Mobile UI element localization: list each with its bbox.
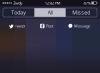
staticText: 12:42 PM xyxy=(45,0,61,6)
staticText: Today xyxy=(11,9,26,16)
button[interactable]: Post xyxy=(40,22,53,30)
staticText: Post xyxy=(46,23,53,29)
staticText: Tweet xyxy=(15,23,25,29)
button[interactable]: Tweet xyxy=(9,22,25,30)
staticText: Message xyxy=(74,23,90,29)
staticText: Missed xyxy=(72,9,90,16)
staticText: 2wdy xyxy=(13,0,22,6)
button[interactable]: Today xyxy=(3,8,34,17)
staticText: All xyxy=(47,9,52,16)
button[interactable]: All xyxy=(34,8,66,17)
button[interactable]: Missed xyxy=(66,8,97,17)
staticText: 47% xyxy=(83,0,90,6)
button[interactable]: Message xyxy=(68,22,90,30)
